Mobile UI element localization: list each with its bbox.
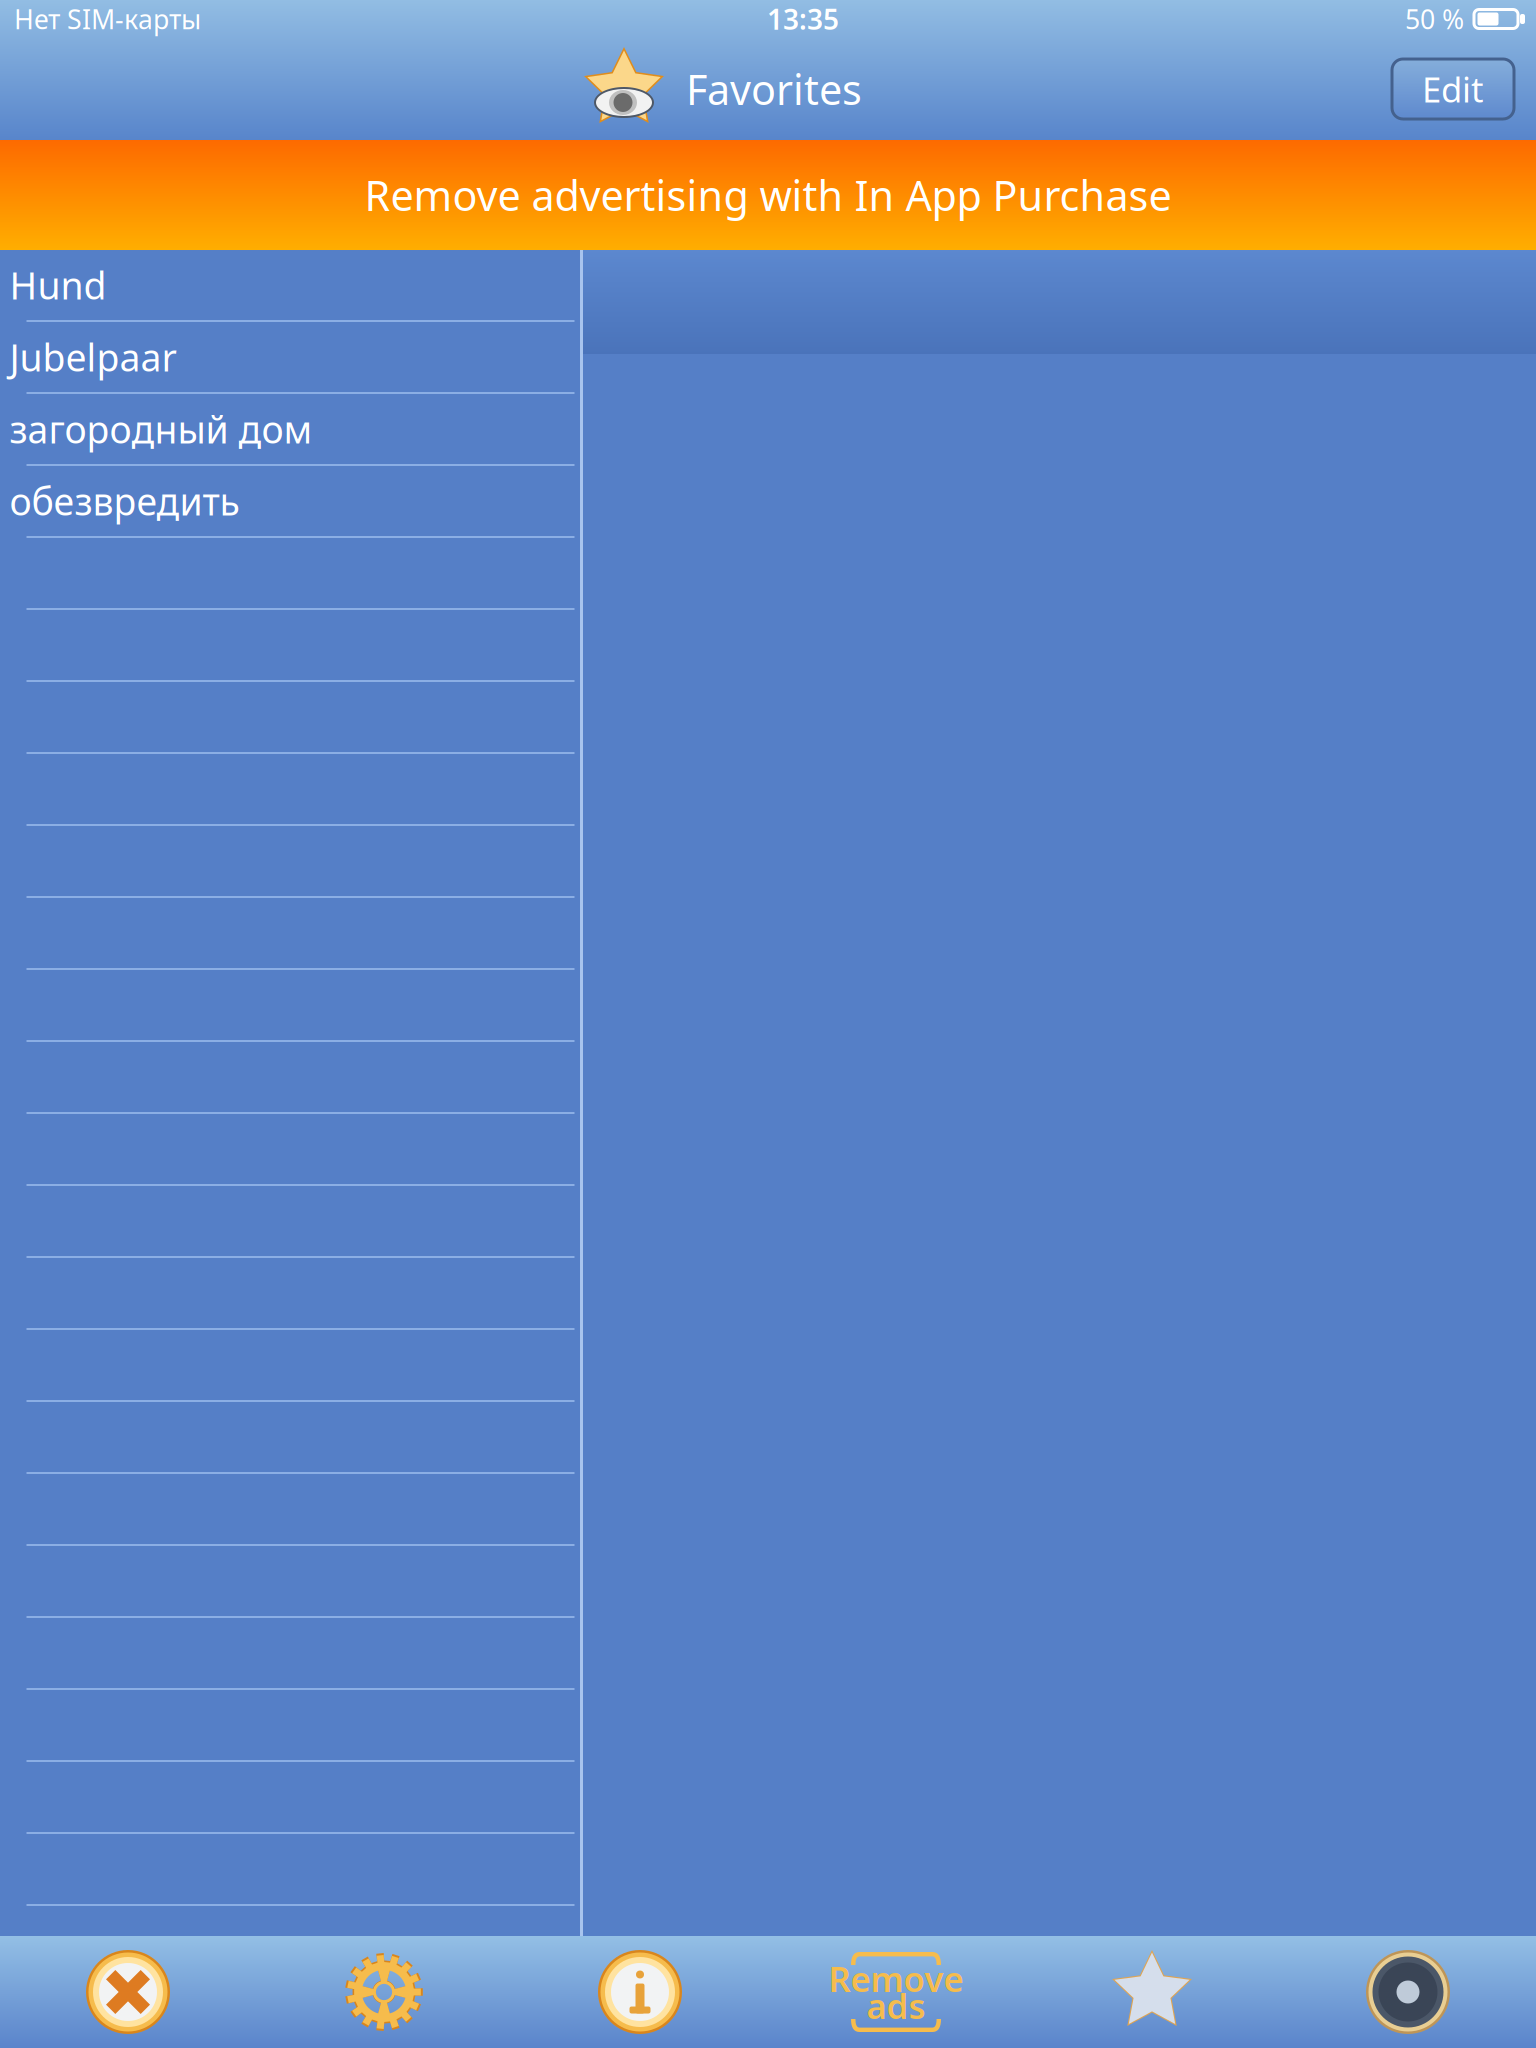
button[interactable]: [0, 1546, 582, 1618]
button[interactable]: [0, 898, 582, 970]
button[interactable]: Jubelpaar: [0, 322, 582, 394]
staticText: Нет SIM-карты: [14, 1, 201, 37]
button[interactable]: Close: [0, 1936, 256, 2048]
button[interactable]: [0, 1114, 582, 1186]
staticText: 50 %: [1405, 1, 1464, 37]
staticText: Jubelpaar: [9, 332, 176, 382]
staticText: 13:35: [767, 0, 839, 38]
staticText: Hund: [9, 260, 106, 310]
button[interactable]: [0, 970, 582, 1042]
button[interactable]: Info: [512, 1936, 768, 2048]
button[interactable]: Edit: [1392, 59, 1514, 119]
button[interactable]: [0, 1834, 582, 1906]
staticText: Remove advertising with In App Purchase: [364, 168, 1171, 222]
button[interactable]: Sound: [1280, 1936, 1536, 2048]
button[interactable]: [0, 1618, 582, 1690]
button[interactable]: [0, 1258, 582, 1330]
staticText: Favorites: [686, 62, 862, 116]
button[interactable]: [0, 1042, 582, 1114]
button[interactable]: загородный дом: [0, 394, 582, 466]
button[interactable]: Favorites: [1024, 1936, 1280, 2048]
button[interactable]: обезвредить: [0, 466, 582, 538]
button[interactable]: [0, 1186, 582, 1258]
button[interactable]: [0, 1690, 582, 1762]
button[interactable]: Remove advertising with In App Purchase: [0, 140, 1536, 250]
button[interactable]: [0, 826, 582, 898]
button[interactable]: [0, 754, 582, 826]
button[interactable]: [0, 1330, 582, 1402]
staticText: загородный дом: [9, 404, 312, 454]
button[interactable]: Hund: [0, 250, 582, 322]
staticText: Remove: [828, 1955, 963, 2001]
button[interactable]: [0, 682, 582, 754]
button[interactable]: Settings: [256, 1936, 512, 2048]
button[interactable]: [0, 1474, 582, 1546]
button[interactable]: [0, 1402, 582, 1474]
button[interactable]: Remove ads: [768, 1936, 1024, 2048]
button[interactable]: [0, 1762, 582, 1834]
staticText: ads: [866, 1982, 925, 2028]
button[interactable]: [0, 610, 582, 682]
button[interactable]: [0, 538, 582, 610]
staticText: Edit: [1422, 66, 1484, 112]
staticText: обезвредить: [9, 476, 239, 526]
